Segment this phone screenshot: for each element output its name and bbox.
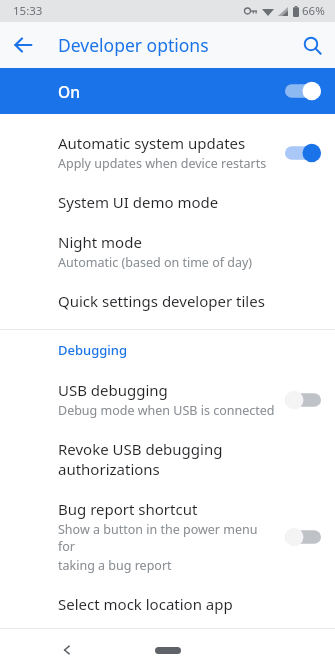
staticText: taking a bug report <box>58 557 172 574</box>
button[interactable]: Back <box>52 635 82 665</box>
staticText: Show a button in the power menu for <box>58 521 277 555</box>
button[interactable]: On <box>0 68 335 114</box>
staticText: 15:33 <box>13 3 43 19</box>
staticText: Automatic system updates <box>58 133 246 153</box>
button[interactable]: Select mock location app <box>0 584 335 628</box>
staticText: 66% <box>302 3 325 19</box>
button[interactable]: Night mode <box>0 222 335 281</box>
staticText: USB debugging <box>58 380 168 400</box>
staticText: Debug mode when USB is connected <box>58 402 275 419</box>
staticText: System UI demo mode <box>58 192 219 212</box>
button[interactable]: Revoke USB debugging authorizations <box>0 429 335 489</box>
staticText: Developer options <box>58 33 209 57</box>
button[interactable]: System UI demo mode <box>0 182 335 222</box>
staticText: Automatic (based on time of day) <box>58 254 253 271</box>
button[interactable]: Quick settings developer tiles <box>0 281 335 321</box>
staticText: Apply updates when device restarts <box>58 155 267 172</box>
button[interactable]: Home <box>138 638 198 662</box>
button[interactable]: Automatic system updates <box>0 123 335 182</box>
staticText: Select mock location app <box>58 594 233 614</box>
staticText: Revoke USB debugging authorizations <box>58 439 313 479</box>
staticText: Debugging <box>58 341 128 359</box>
button[interactable]: Back <box>0 22 46 68</box>
staticText: On <box>58 81 80 102</box>
staticText: Quick settings developer tiles <box>58 291 265 311</box>
button[interactable]: USB debugging <box>0 370 335 429</box>
button[interactable]: Bug report shortcut <box>0 489 335 584</box>
staticText: Night mode <box>58 232 142 252</box>
staticText: Bug report shortcut <box>58 499 198 519</box>
button[interactable]: Search <box>289 22 335 68</box>
